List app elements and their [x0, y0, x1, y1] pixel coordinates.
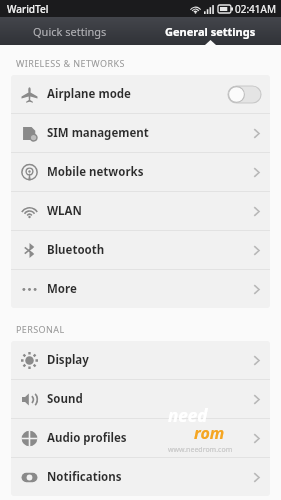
button[interactable]: Bluetooth: [11, 231, 270, 269]
staticText: rom: [194, 422, 225, 444]
button[interactable]: WLAN: [11, 192, 270, 230]
staticText: Mobile networks: [47, 164, 144, 180]
staticText: PERSONAL: [16, 323, 65, 335]
button[interactable]: Mobile networks: [11, 153, 270, 191]
button[interactable]: Display: [11, 341, 270, 379]
staticText: Quick settings: [33, 24, 107, 39]
staticText: General settings: [165, 24, 256, 39]
button[interactable]: Sound: [11, 380, 270, 418]
staticText: Display: [47, 352, 89, 368]
button[interactable]: General settings: [140, 17, 281, 45]
button[interactable]: SIM management: [11, 114, 270, 152]
staticText: need: [168, 404, 208, 427]
staticText: More: [47, 281, 77, 297]
button[interactable]: Audio profiles: [11, 419, 270, 457]
staticText: WaridTel: [7, 2, 49, 16]
staticText: WIRELESS & NETWORKS: [16, 57, 125, 69]
button[interactable]: Quick settings: [0, 17, 140, 45]
button[interactable]: Airplane mode: [11, 75, 270, 113]
staticText: 02:41AM: [235, 2, 277, 16]
staticText: SIM management: [47, 125, 149, 141]
staticText: www.needrom.com: [168, 445, 233, 455]
staticText: Notifications: [47, 469, 122, 485]
button[interactable]: Notifications: [11, 458, 270, 496]
staticText: Airplane mode: [47, 86, 131, 102]
staticText: WLAN: [47, 203, 82, 219]
button[interactable]: More: [11, 270, 270, 308]
staticText: Bluetooth: [47, 242, 105, 258]
staticText: Sound: [47, 391, 83, 407]
staticText: Audio profiles: [47, 430, 127, 446]
